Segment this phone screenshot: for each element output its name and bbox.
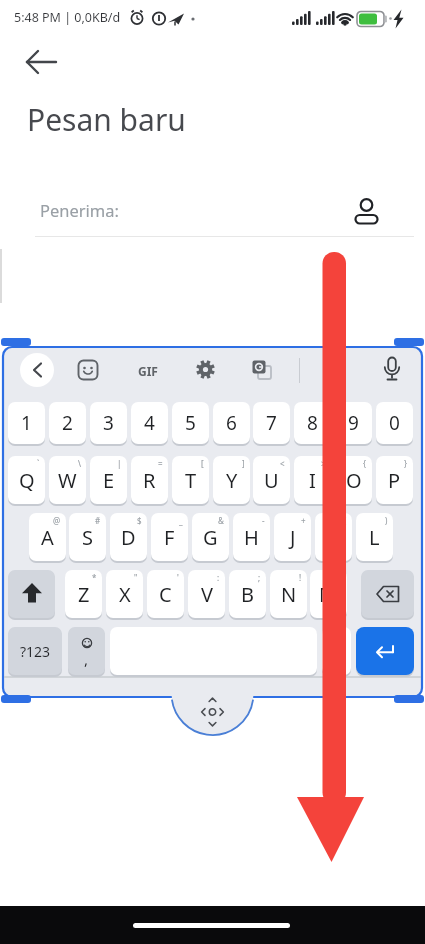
staticText: V bbox=[201, 581, 213, 608]
button[interactable]: Y bbox=[213, 456, 250, 504]
button[interactable]: W bbox=[49, 456, 86, 504]
button[interactable]: 0 bbox=[376, 402, 413, 444]
button[interactable]: F bbox=[151, 513, 188, 561]
button[interactable]: X bbox=[106, 570, 143, 618]
staticText: Pesan baru bbox=[27, 99, 186, 140]
button[interactable]: Penerima: bbox=[26, 188, 414, 236]
button[interactable] bbox=[77, 359, 99, 381]
staticText: 3 bbox=[103, 410, 114, 436]
staticText: 4 bbox=[144, 410, 155, 436]
staticText: $ bbox=[137, 515, 142, 526]
button[interactable]: GIF bbox=[133, 362, 163, 380]
button[interactable]: 1 bbox=[8, 402, 45, 444]
button[interactable]: K bbox=[315, 513, 352, 561]
staticText: < bbox=[280, 458, 285, 469]
staticText: 7 bbox=[266, 410, 277, 436]
staticText: W bbox=[58, 467, 77, 494]
button[interactable]: Q bbox=[8, 456, 45, 504]
button[interactable]: 2 bbox=[49, 402, 86, 444]
staticText: ! bbox=[299, 572, 302, 583]
staticText: ] bbox=[242, 458, 245, 469]
button[interactable]: J bbox=[274, 513, 311, 561]
staticText: T bbox=[185, 467, 197, 494]
staticText: O bbox=[346, 467, 362, 494]
button[interactable] bbox=[381, 356, 403, 384]
staticText: * bbox=[92, 572, 97, 583]
staticText: - bbox=[262, 515, 265, 526]
staticText: Z bbox=[78, 581, 90, 608]
staticText: L bbox=[369, 524, 380, 551]
button[interactable]: 9 bbox=[335, 402, 372, 444]
staticText: 8 bbox=[307, 410, 318, 436]
staticText: ' bbox=[177, 572, 179, 583]
staticText: # bbox=[95, 515, 101, 526]
button[interactable]: 8 bbox=[294, 402, 331, 444]
button[interactable]: , bbox=[68, 627, 105, 675]
button[interactable]: N bbox=[270, 570, 307, 618]
button[interactable]: B bbox=[229, 570, 266, 618]
button[interactable]: G bbox=[192, 513, 229, 561]
staticText: F bbox=[164, 524, 175, 551]
button[interactable]: 3 bbox=[90, 402, 127, 444]
staticText: GIF bbox=[138, 363, 158, 379]
button[interactable]: V bbox=[188, 570, 225, 618]
staticText: N bbox=[281, 581, 297, 608]
button[interactable]: 5 bbox=[172, 402, 209, 444]
staticText: Y bbox=[226, 467, 238, 494]
button[interactable]: . bbox=[322, 627, 351, 675]
staticText: A bbox=[41, 524, 54, 551]
staticText: \ bbox=[78, 458, 81, 469]
staticText: 1 bbox=[21, 410, 32, 436]
staticText: X bbox=[119, 581, 131, 608]
button[interactable] bbox=[194, 358, 217, 381]
staticText: 5:48 PM | 0,0KB/d bbox=[14, 9, 121, 26]
button[interactable]: E bbox=[90, 456, 127, 504]
button[interactable]: T bbox=[172, 456, 209, 504]
button[interactable]: M bbox=[310, 570, 347, 618]
staticText: " bbox=[134, 572, 138, 583]
button[interactable] bbox=[18, 44, 70, 82]
button[interactable]: 4 bbox=[131, 402, 168, 444]
button[interactable]: U bbox=[253, 456, 290, 504]
button[interactable]: ?123 bbox=[8, 627, 62, 675]
staticText: 5 bbox=[185, 410, 196, 436]
staticText: { bbox=[363, 458, 367, 469]
button[interactable]: A bbox=[29, 513, 66, 561]
button[interactable]: C bbox=[147, 570, 184, 618]
staticText: : bbox=[217, 572, 220, 583]
staticText: U bbox=[264, 467, 279, 494]
staticText: G bbox=[203, 524, 218, 551]
button[interactable]: 6 bbox=[213, 402, 250, 444]
staticText: 0 bbox=[389, 410, 400, 436]
staticText: S bbox=[82, 524, 93, 551]
staticText: = bbox=[158, 458, 163, 469]
button[interactable]: 7 bbox=[253, 402, 290, 444]
staticText: } bbox=[404, 458, 408, 469]
button[interactable]: P bbox=[376, 456, 413, 504]
staticText: 2 bbox=[62, 410, 73, 436]
button[interactable] bbox=[251, 359, 273, 381]
button[interactable]: D bbox=[110, 513, 147, 561]
button[interactable]: L bbox=[356, 513, 393, 561]
button[interactable] bbox=[8, 570, 55, 618]
button[interactable]: O bbox=[335, 456, 372, 504]
button[interactable]: I bbox=[294, 456, 331, 504]
staticText: P bbox=[388, 467, 401, 494]
staticText: + bbox=[301, 515, 306, 526]
staticText: , bbox=[84, 649, 89, 669]
button[interactable]: Z bbox=[65, 570, 102, 618]
button[interactable] bbox=[20, 353, 54, 387]
button[interactable]: S bbox=[69, 513, 106, 561]
staticText: M bbox=[319, 581, 338, 608]
button[interactable] bbox=[361, 570, 414, 618]
button[interactable] bbox=[356, 627, 414, 675]
button[interactable]: R bbox=[131, 456, 168, 504]
staticText: I bbox=[309, 467, 316, 494]
staticText: D bbox=[121, 524, 136, 551]
staticText: 6 bbox=[226, 410, 237, 436]
button[interactable]: H bbox=[233, 513, 270, 561]
